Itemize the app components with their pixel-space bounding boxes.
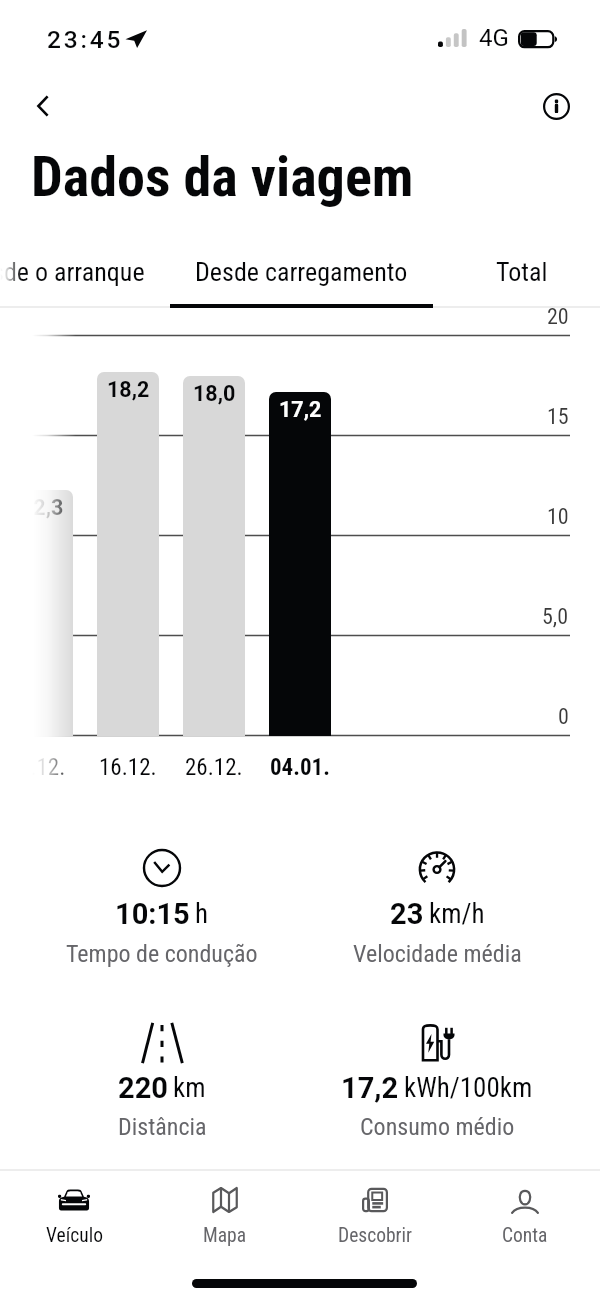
staticText: Descobrir [338,1224,412,1247]
staticText: 12,3 [21,495,64,520]
staticText: Consumo médio [360,1113,515,1141]
button[interactable]: Desde carregamento [170,248,433,308]
staticText: 20 [547,304,569,330]
staticText: 10:15 [115,897,190,931]
button[interactable]: Veículo [0,1171,149,1269]
staticText: 16.12. [99,754,157,781]
staticText: 23:45 [47,25,124,54]
staticText: 10 [547,504,569,530]
staticText: 220 [118,1071,168,1105]
staticText: Conta [502,1224,548,1247]
button[interactable]: Information [534,84,578,128]
staticText: h [195,898,209,930]
staticText: Desde carregamento [195,257,408,287]
staticText: 0 [558,704,569,730]
button[interactable]: 17,2 [299,1015,575,1160]
staticText: kWh/100km [404,1072,533,1104]
staticText: 04.01. [270,754,330,781]
staticText: 15 [547,404,569,430]
staticText: 23 [390,897,424,931]
staticText: km/h [429,898,485,930]
button[interactable]: Conta [450,1171,600,1269]
staticText: 17,2 [341,1071,399,1105]
staticText: 26.12. [185,754,243,781]
staticText: Desde o arranque [0,257,145,287]
staticText: Dados da viagem [31,144,414,210]
staticText: 18,2 [107,377,150,402]
staticText: km [173,1072,206,1104]
button[interactable]: Descobrir [300,1171,450,1269]
button[interactable]: 10:15 [24,842,300,987]
button[interactable]: Back [21,84,65,128]
staticText: 4G [479,24,509,52]
staticText: Velocidade média [353,940,522,968]
staticText: Distância [118,1113,207,1141]
button[interactable]: Mapa [150,1171,300,1269]
staticText: Veículo [46,1224,103,1247]
button[interactable]: 12,3 [11,490,73,736]
staticText: Mapa [203,1224,247,1247]
button[interactable]: Total [438,248,600,308]
staticText: 18,0 [193,381,236,406]
staticText: 17,2 [279,397,322,422]
staticText: 1.12. [19,754,66,781]
button[interactable]: Desde o arranque [0,248,160,308]
staticText: 5,0 [542,604,569,630]
staticText: Tempo de condução [66,940,258,968]
button[interactable]: 18,2 [97,372,159,736]
button[interactable]: 220 [24,1017,300,1162]
button[interactable]: 23 [299,843,575,988]
button[interactable]: 18,0 [183,376,245,736]
button[interactable]: 17,2 [269,392,331,736]
staticText: Total [496,257,548,287]
